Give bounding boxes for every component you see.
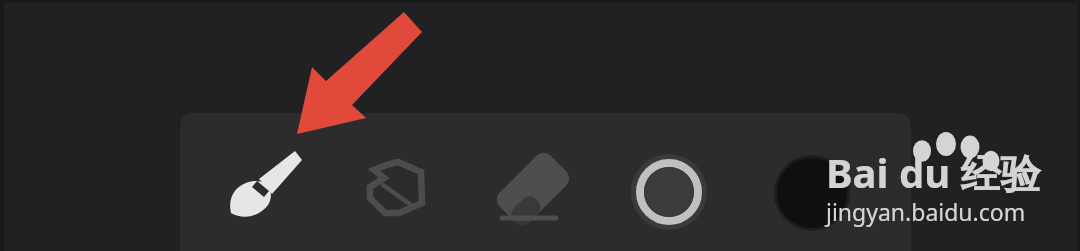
button[interactable]: Brush: [207, 136, 317, 246]
staticText: Bai du 经验: [826, 145, 1041, 200]
button[interactable]: Eraser: [478, 136, 588, 246]
button[interactable]: Brush size: [614, 136, 724, 246]
button[interactable]: Smudge: [341, 136, 451, 246]
button[interactable]: Color: [757, 136, 867, 246]
staticText: jingyan.baidu.com: [826, 196, 1026, 227]
